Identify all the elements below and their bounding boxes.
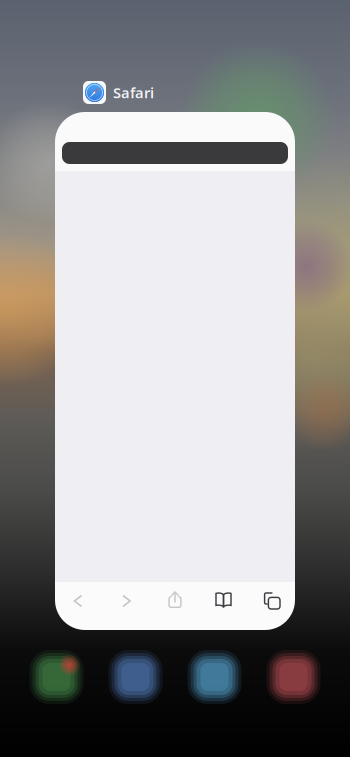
button[interactable]: Forward — [110, 585, 142, 617]
button[interactable]: Back — [62, 585, 94, 617]
button[interactable]: Bookmarks — [207, 585, 239, 617]
button[interactable]: Tabs — [256, 585, 288, 617]
staticText: Safari — [113, 83, 154, 102]
button[interactable]: Share — [159, 585, 191, 617]
